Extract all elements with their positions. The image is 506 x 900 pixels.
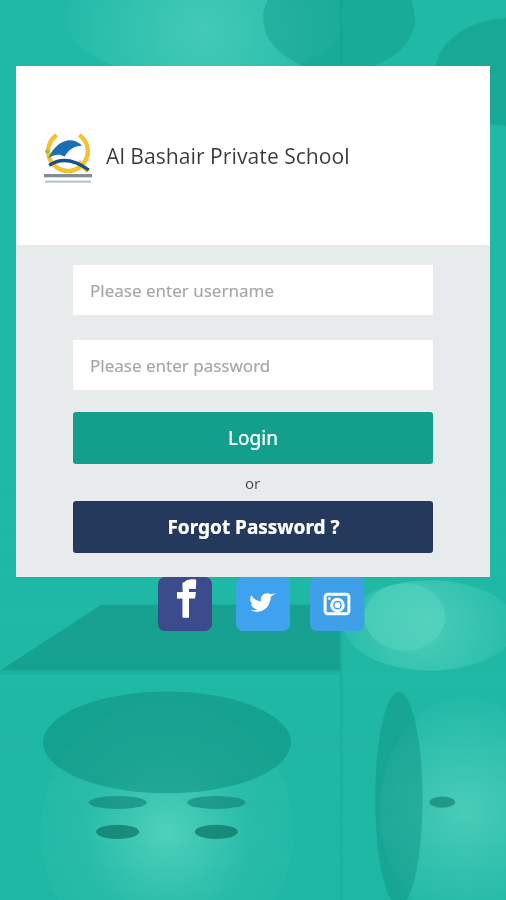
button[interactable]: Please enter password: [73, 340, 433, 390]
button[interactable]: Instagram: [310, 577, 364, 631]
button[interactable]: Forgot Password ?: [73, 501, 433, 553]
button[interactable]: Login: [73, 412, 433, 464]
staticText: Al Bashair Private School: [106, 142, 350, 171]
staticText: or: [245, 473, 261, 493]
button[interactable]: Twitter: [236, 577, 290, 631]
staticText: Forgot Password ?: [167, 514, 340, 540]
staticText: Please enter username: [90, 279, 274, 302]
staticText: Login: [228, 425, 278, 451]
button[interactable]: Please enter username: [73, 265, 433, 315]
staticText: Please enter password: [90, 354, 271, 377]
button[interactable]: Facebook: [158, 577, 212, 631]
